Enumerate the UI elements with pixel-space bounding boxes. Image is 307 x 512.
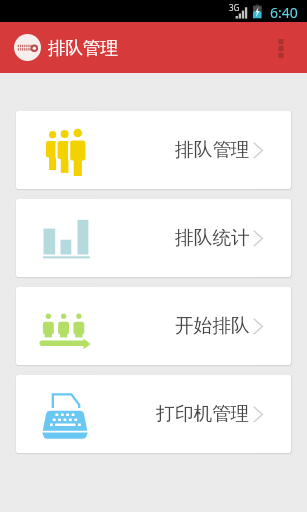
- staticText: 开始排队: [175, 314, 250, 338]
- staticText: 排队统计: [175, 226, 250, 250]
- button[interactable]: 排队管理: [16, 111, 291, 189]
- button[interactable]: 打印机管理: [16, 375, 291, 453]
- staticText: 打印机管理: [156, 402, 250, 426]
- button[interactable]: 开始排队: [16, 287, 291, 365]
- staticText: 排队管理: [175, 138, 250, 162]
- button[interactable]: More options: [264, 31, 298, 65]
- button[interactable]: 排队统计: [16, 199, 291, 277]
- staticText: 3G: [229, 2, 240, 13]
- staticText: 6:40: [270, 3, 298, 22]
- staticText: 排队管理: [48, 37, 118, 59]
